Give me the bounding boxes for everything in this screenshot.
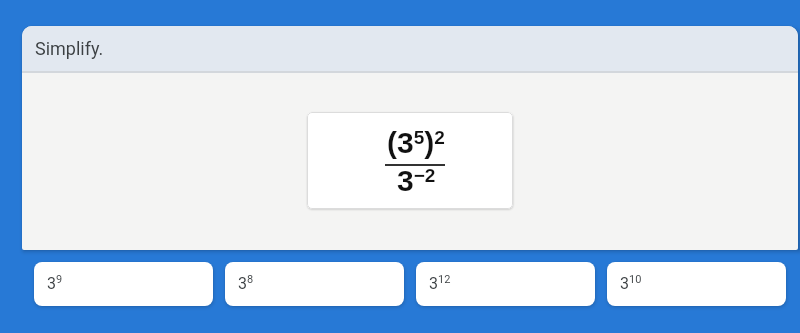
button[interactable]: 38	[225, 262, 404, 306]
button[interactable]: 310	[607, 262, 786, 306]
button[interactable]: 312	[416, 262, 595, 306]
staticText: 312	[429, 273, 451, 293]
button[interactable]: 39	[34, 262, 213, 306]
staticText: 310	[620, 273, 642, 293]
staticText: 39	[47, 273, 63, 293]
staticText: Simplify.	[35, 38, 104, 59]
staticText: (35)2	[387, 126, 445, 160]
staticText: 3−2	[397, 164, 436, 198]
staticText: 38	[238, 273, 254, 293]
